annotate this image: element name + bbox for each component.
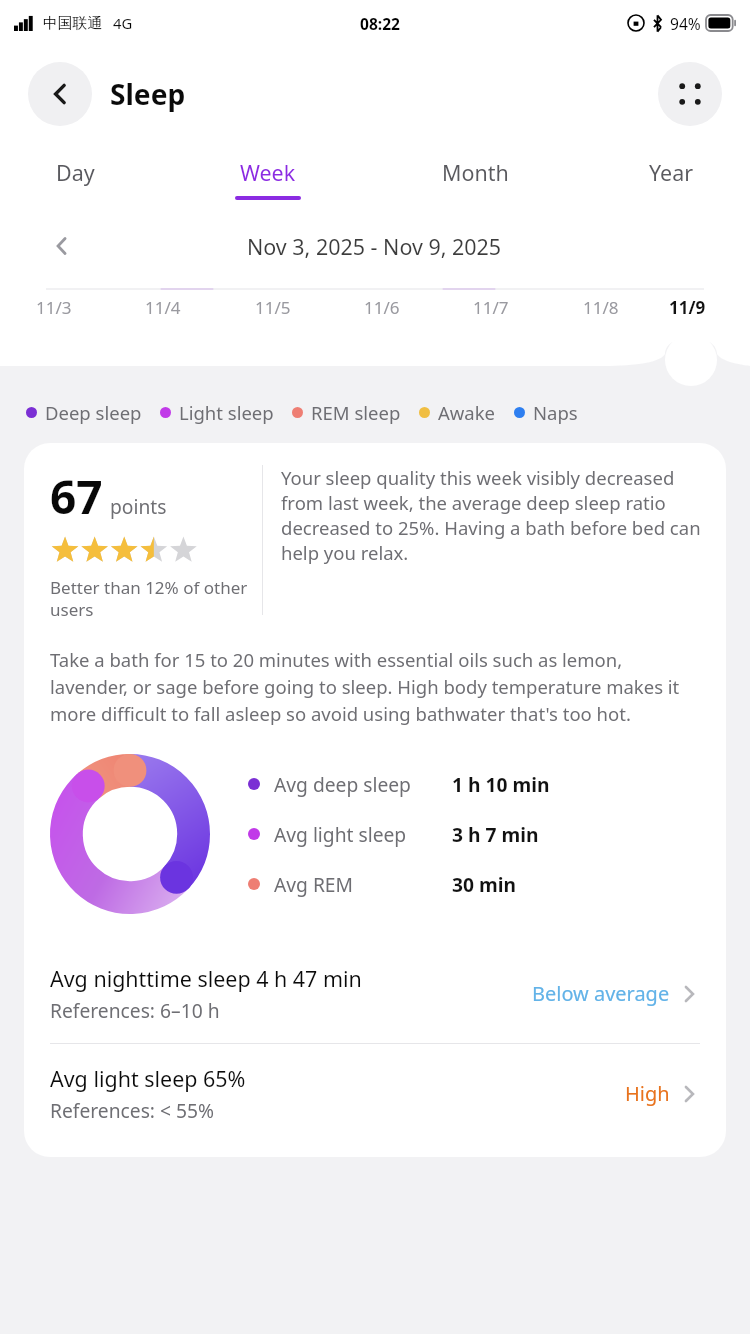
staticText: High [625,1080,670,1107]
staticText: References: < 55% [50,1097,215,1123]
staticText: Avg light sleep [274,821,407,847]
button[interactable]: Back [28,62,92,126]
staticText: Avg nighttime sleep 4 h 47 min [50,964,362,993]
staticText: Day [56,158,95,187]
staticText: 11/6 [364,296,400,319]
button[interactable]: Avg light sleep 65% [24,1044,726,1143]
staticText: 08:22 [360,13,400,34]
button[interactable]: Year [639,156,704,202]
staticText: Your sleep quality this week visibly dec… [281,465,704,565]
staticText: Take a bath for 15 to 20 minutes with es… [50,647,700,726]
staticText: 11/8 [583,296,619,319]
staticText: 4G [113,13,133,33]
staticText: Awake [438,400,496,425]
staticText: Naps [533,400,578,425]
button[interactable]: Avg deep sleep [248,771,550,797]
staticText: 11/4 [145,296,181,319]
button[interactable]: Avg REM [248,871,517,897]
staticText: References: 6–10 h [50,997,220,1023]
button[interactable]: Previous week [40,224,84,268]
staticText: 1 h 10 min [452,771,550,797]
button[interactable]: Month [432,156,519,202]
button[interactable]: Day [46,156,105,202]
staticText: Light sleep [179,400,274,425]
staticText: points [110,493,167,519]
staticText: Avg REM [274,871,353,897]
staticText: 67 [50,465,103,527]
staticText: Avg deep sleep [274,771,411,797]
staticText: 11/9 [669,296,706,319]
staticText: 3 h 7 min [452,821,539,847]
button[interactable]: Week [225,156,311,202]
staticText: 30 min [452,871,517,897]
button[interactable]: Avg light sleep [248,821,539,847]
staticText: Nov 3, 2025 - Nov 9, 2025 [247,232,502,261]
staticText: Avg light sleep 65% [50,1064,246,1093]
staticText: 94% [670,13,701,34]
staticText: 中国联通 [43,14,103,33]
staticText: Sleep [110,75,186,113]
staticText: 11/5 [255,296,291,319]
staticText: Better than 12% of other users [50,576,248,621]
button[interactable]: More options [658,62,722,126]
staticText: 11/3 [36,296,72,319]
button[interactable]: Avg nighttime sleep 4 h 47 min [24,944,726,1043]
staticText: Year [649,158,694,187]
staticText: Week [240,158,296,187]
staticText: REM sleep [311,400,401,425]
staticText: Month [442,158,509,187]
staticText: Deep sleep [45,400,142,425]
staticText: 11/7 [473,296,509,319]
staticText: Below average [532,980,670,1007]
